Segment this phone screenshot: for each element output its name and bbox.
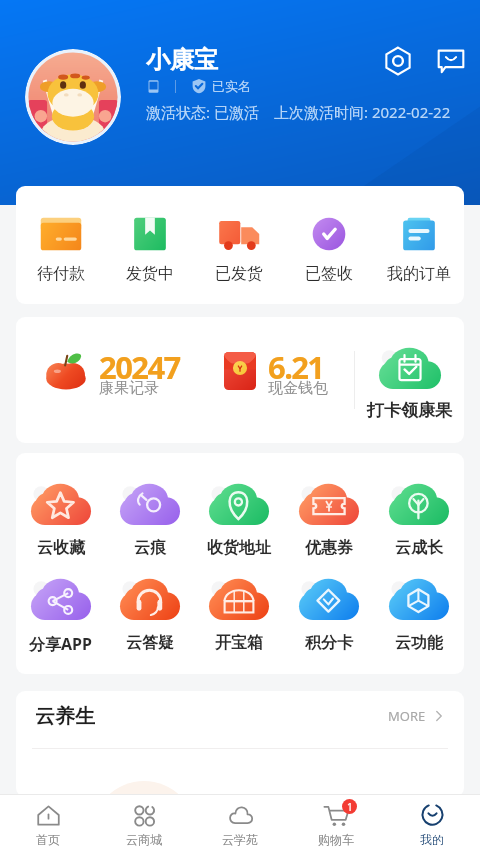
staticText: MORE (388, 707, 426, 725)
button[interactable]: 已发货 (194, 217, 284, 284)
staticText: 现金钱包 (268, 379, 328, 398)
staticText: 云收藏 (37, 538, 85, 558)
button[interactable]: 我的订单 (374, 217, 464, 284)
button[interactable]: 云功能 (374, 578, 464, 653)
button[interactable]: Settings (380, 43, 416, 79)
staticText: 发货中 (126, 264, 174, 284)
staticText: 小康宝 (146, 45, 218, 75)
button[interactable]: 我的 (384, 795, 480, 853)
staticText: 1 (347, 800, 353, 814)
button[interactable]: 首页 (0, 795, 96, 853)
button[interactable]: 打卡领康果 (355, 321, 464, 443)
staticText: 积分卡 (305, 633, 353, 653)
staticText: 开宝箱 (215, 633, 263, 653)
button[interactable]: 1 (288, 795, 384, 853)
staticText: 待付款 (37, 264, 85, 284)
staticText: 康果记录 (99, 379, 159, 398)
staticText: 云学苑 (222, 832, 258, 847)
staticText: 20247 (99, 346, 180, 388)
button[interactable]: 云商城 (96, 795, 192, 853)
button[interactable]: Profile avatar (25, 49, 121, 145)
staticText: 我的订单 (387, 264, 451, 284)
button[interactable]: 分享APP (16, 578, 105, 655)
staticText: 优惠券 (305, 538, 353, 558)
staticText: 云功能 (395, 633, 443, 653)
button[interactable]: 云收藏 (16, 483, 105, 558)
button[interactable]: 云答疑 (105, 578, 194, 653)
staticText: 收货地址 (207, 538, 271, 558)
button[interactable]: MORE (384, 703, 450, 729)
staticText: 我的 (420, 832, 444, 847)
staticText: 打卡领康果 (367, 400, 452, 421)
button[interactable]: 收货地址 (194, 483, 284, 558)
button[interactable]: 优惠券 (284, 483, 374, 558)
button[interactable]: 云学苑 (192, 795, 288, 853)
staticText: 激活状态: 已激活 (146, 102, 259, 122)
staticText: 已实名 (212, 78, 251, 94)
button[interactable]: 开宝箱 (194, 578, 284, 653)
staticText: 首页 (36, 832, 60, 847)
button[interactable]: 已签收 (284, 217, 374, 284)
staticText: 上次激活时间: 2022-02-22 (274, 102, 451, 122)
staticText: 购物车 (318, 832, 354, 847)
button[interactable]: 云痕 (105, 483, 194, 558)
staticText: 云痕 (134, 538, 166, 558)
staticText: 分享APP (29, 633, 92, 655)
staticText: 云成长 (395, 538, 443, 558)
button[interactable]: 云成长 (374, 483, 464, 558)
staticText: 已签收 (305, 264, 353, 284)
staticText: 6.21 (268, 346, 324, 388)
staticText: 云养生 (35, 704, 95, 729)
staticText: 已发货 (215, 264, 263, 284)
staticText: 云答疑 (126, 633, 174, 653)
button[interactable]: 6.21 (192, 317, 354, 434)
staticText: 云商城 (126, 832, 162, 847)
button[interactable]: 积分卡 (284, 578, 374, 653)
button[interactable]: 20247 (16, 317, 192, 434)
button[interactable]: 发货中 (105, 217, 194, 284)
button[interactable]: Messages (433, 43, 469, 79)
button[interactable]: 待付款 (16, 217, 105, 284)
